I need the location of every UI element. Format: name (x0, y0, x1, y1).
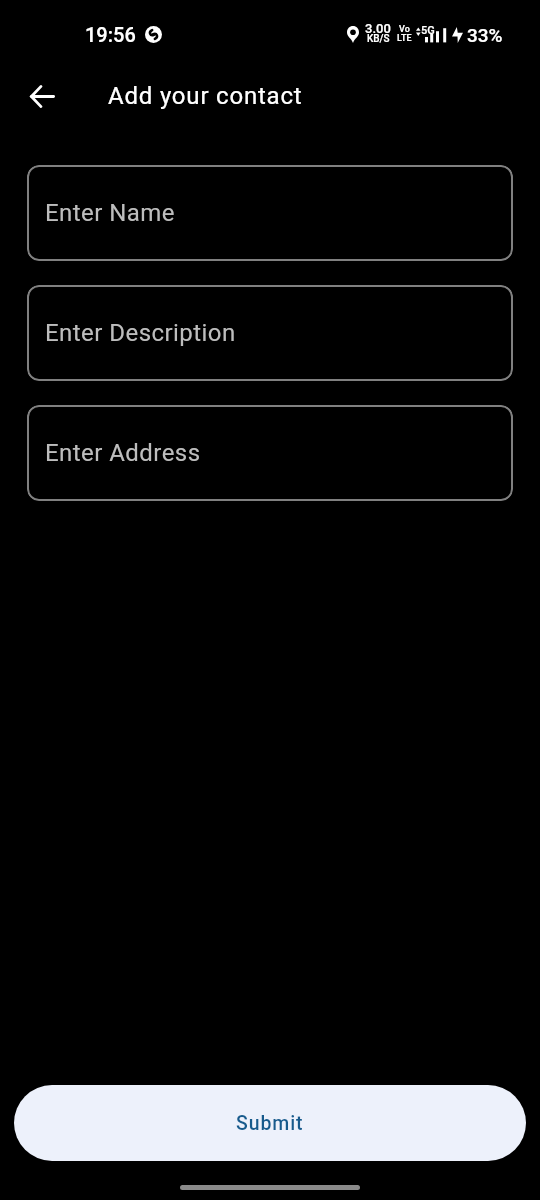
staticText: LTE (397, 33, 412, 44)
button[interactable]: Enter Address (27, 405, 513, 501)
button[interactable]: Back (18, 72, 66, 120)
staticText: 5G (421, 24, 435, 37)
button[interactable]: Submit (14, 1085, 526, 1161)
staticText: Add your contact (108, 82, 303, 110)
staticText: KB/S (367, 33, 390, 45)
staticText: Enter Description (45, 319, 236, 347)
staticText: Vo (399, 24, 410, 35)
staticText: Enter Address (45, 439, 201, 467)
staticText: 19:56 (85, 23, 136, 46)
staticText: 33% (467, 24, 503, 46)
button[interactable]: Enter Description (27, 285, 513, 381)
staticText: Enter Name (45, 199, 176, 227)
staticText: 3.00 (365, 21, 391, 36)
staticText: Submit (236, 1112, 304, 1135)
button[interactable]: Enter Name (27, 165, 513, 261)
